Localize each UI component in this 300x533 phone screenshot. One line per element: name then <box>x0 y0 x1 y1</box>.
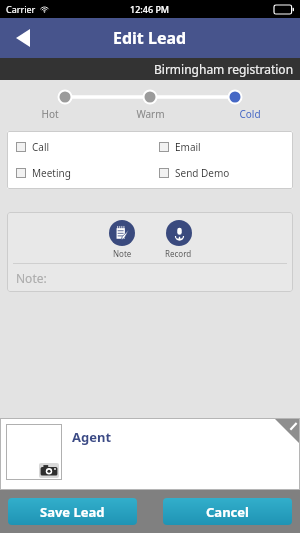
staticText: Save Lead <box>40 503 105 521</box>
staticText: Note: <box>16 270 47 286</box>
button[interactable]: Edit <box>274 418 300 444</box>
staticText: Carrier <box>6 3 36 15</box>
button[interactable]: Hot <box>0 107 100 121</box>
staticText: Send Demo <box>175 166 230 180</box>
button[interactable]: Send Demo <box>150 164 293 182</box>
button[interactable]: Note: <box>7 264 293 292</box>
staticText: Cold <box>239 107 261 121</box>
button[interactable]: Warm <box>100 107 200 121</box>
staticText: Call <box>32 140 50 154</box>
button[interactable]: Take photo <box>38 462 60 478</box>
button[interactable]: Cancel <box>163 498 292 525</box>
button[interactable]: Note <box>105 220 139 259</box>
staticText: Email <box>175 140 201 154</box>
staticText: Note <box>113 248 132 259</box>
button[interactable]: Email <box>150 138 293 156</box>
button[interactable]: Call <box>7 138 150 156</box>
button[interactable]: Meeting <box>7 164 150 182</box>
staticText: Record <box>165 248 192 259</box>
staticText: Cancel <box>206 503 249 521</box>
staticText: Meeting <box>32 166 71 180</box>
staticText: Warm <box>136 107 165 121</box>
button[interactable]: Record <box>161 220 196 259</box>
staticText: 12:46 PM <box>130 3 170 15</box>
staticText: Agent <box>72 428 112 446</box>
button[interactable]: Cold <box>200 107 300 121</box>
staticText: Hot <box>41 107 59 121</box>
button[interactable]: Take photo <box>0 418 300 490</box>
button[interactable]: Back <box>6 21 40 55</box>
staticText: Edit Lead <box>113 27 187 49</box>
button[interactable]: Save Lead <box>8 498 137 525</box>
staticText: Birmingham registration <box>154 61 294 77</box>
